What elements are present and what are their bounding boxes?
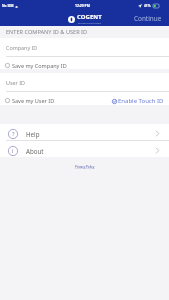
staticText: About	[26, 147, 44, 155]
button[interactable]: User ID	[0, 73, 169, 91]
staticText: Enable Touch ID	[118, 97, 164, 105]
button[interactable]: Save my User ID	[0, 92, 169, 105]
staticText: No SIM	[2, 4, 14, 8]
staticText: ENTER COMPANY ID & USER ID	[6, 28, 88, 36]
button[interactable]: Save my Company ID	[0, 57, 169, 69]
staticText: Save my User ID	[12, 97, 55, 104]
button[interactable]: i	[0, 141, 169, 157]
staticText: 12:29 PM	[75, 3, 90, 8]
staticText: Company ID	[6, 44, 38, 51]
button[interactable]: Company ID	[0, 38, 169, 56]
button[interactable]: Continue	[127, 11, 169, 26]
staticText: i	[12, 147, 14, 155]
staticText: Continue	[134, 14, 162, 23]
staticText: User ID	[6, 79, 25, 86]
button[interactable]: Enable Touch ID	[112, 97, 164, 105]
staticText: Privacy Policy	[75, 165, 95, 169]
staticText: ?	[12, 130, 15, 138]
staticText: Help	[26, 130, 40, 138]
staticText: BUILDING SOLUTIONS	[78, 22, 102, 25]
staticText: Save my Company ID	[12, 62, 67, 69]
staticText: COGENT	[77, 13, 102, 21]
staticText: 41%	[144, 4, 151, 8]
button[interactable]: Privacy Policy	[71, 164, 99, 170]
button[interactable]: ?	[0, 124, 169, 140]
